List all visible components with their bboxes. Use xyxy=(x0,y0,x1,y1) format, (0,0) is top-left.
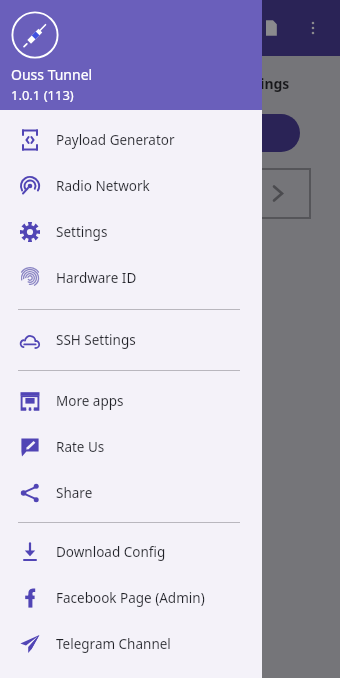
button[interactable]: Radio Network xyxy=(0,163,262,209)
button[interactable] xyxy=(180,114,300,152)
staticText: Facebook Page (Admin) xyxy=(56,589,205,607)
staticText: SSH Settings xyxy=(56,331,136,349)
button[interactable]: Hardware ID xyxy=(0,255,262,301)
button[interactable]: Download Config xyxy=(0,529,262,575)
staticText: Download Config xyxy=(56,543,166,561)
staticText: Radio Network xyxy=(56,177,150,195)
staticText: More apps xyxy=(56,392,124,410)
button[interactable]: Rate Us xyxy=(0,424,262,470)
staticText: Payload Generator xyxy=(56,131,175,149)
staticText: Ouss Tunnel xyxy=(11,65,93,84)
button[interactable]: More apps xyxy=(0,378,262,424)
button[interactable]: Settings xyxy=(0,209,262,255)
staticText: Hardware ID xyxy=(56,269,137,287)
button[interactable]: Share xyxy=(0,470,262,516)
staticText: 1.0.1 (113) xyxy=(11,86,74,104)
button[interactable]: Payload Generator xyxy=(0,117,262,163)
button[interactable]: SSH Settings xyxy=(0,317,262,363)
button[interactable] xyxy=(186,169,310,218)
button[interactable]: Telegram Channel xyxy=(0,621,262,667)
button[interactable]: Facebook Page (Admin) xyxy=(0,575,262,621)
button[interactable]: More options xyxy=(296,11,330,45)
staticText: Share xyxy=(56,484,93,502)
button[interactable]: Log xyxy=(254,11,288,45)
staticText: Telegram Channel xyxy=(56,635,171,653)
staticText: Settings xyxy=(56,223,108,241)
staticText: Settings xyxy=(232,74,290,93)
staticText: Rate Us xyxy=(56,438,105,456)
